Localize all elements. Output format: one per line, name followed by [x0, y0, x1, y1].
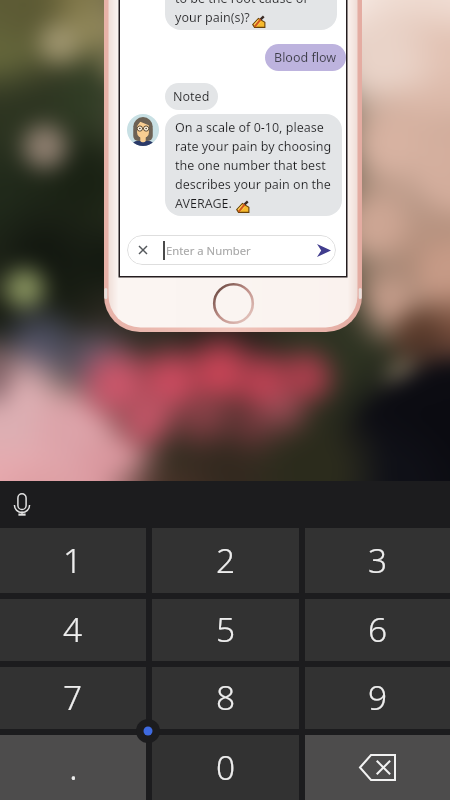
- staticText: 7: [63, 674, 83, 720]
- button[interactable]: 6: [305, 599, 450, 661]
- button[interactable]: Backspace: [305, 735, 450, 800]
- staticText: to be the root cause of your pain(s)?: [175, 0, 308, 25]
- staticText: On a scale of 0-10, please rate your pai…: [175, 119, 332, 211]
- staticText: 1: [63, 537, 83, 583]
- staticText: 4: [63, 606, 83, 652]
- button[interactable]: Home: [213, 283, 254, 324]
- staticText: 8: [216, 674, 236, 720]
- button[interactable]: .: [0, 735, 146, 800]
- button[interactable]: 4: [0, 599, 146, 661]
- staticText: 9: [368, 674, 388, 720]
- staticText: Enter a Number: [166, 243, 251, 258]
- staticText: .: [69, 742, 78, 791]
- button[interactable]: 0: [152, 735, 299, 800]
- button[interactable]: 7: [0, 667, 146, 729]
- button[interactable]: 3: [305, 528, 450, 593]
- button[interactable]: Blood flow: [265, 44, 346, 71]
- button[interactable]: 5: [152, 599, 299, 661]
- button[interactable]: Send: [314, 240, 334, 260]
- staticText: 0: [216, 744, 236, 790]
- staticText: Blood flow: [274, 49, 337, 66]
- button[interactable]: 2: [152, 528, 299, 593]
- staticText: 2: [216, 537, 236, 583]
- button[interactable]: 8: [152, 667, 299, 729]
- staticText: 6: [368, 606, 388, 652]
- button[interactable]: 1: [0, 528, 146, 593]
- staticText: 5: [216, 606, 236, 652]
- button[interactable]: 9: [305, 667, 450, 729]
- staticText: Noted: [173, 88, 210, 105]
- other: Backspace: [359, 754, 396, 781]
- button[interactable]: Voice input: [5, 488, 39, 522]
- staticText: 3: [368, 537, 388, 583]
- button[interactable]: Clear: [127, 235, 336, 265]
- button[interactable]: Clear: [132, 239, 154, 261]
